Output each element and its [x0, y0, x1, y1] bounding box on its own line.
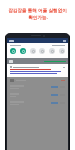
staticText: 잠김장을 통해 어플 실행없이 [8, 7, 67, 13]
button[interactable]: Battery saver [59, 48, 65, 54]
button[interactable]: Bluetooth [20, 48, 26, 54]
button[interactable]: Wi-Fi [10, 48, 16, 54]
button[interactable] [7, 64, 68, 77]
button[interactable]: Auto rotate [49, 48, 55, 54]
staticText: 확인가능. [28, 14, 48, 20]
button[interactable]: Do not disturb [30, 48, 36, 54]
button[interactable]: Flashlight [39, 48, 45, 54]
